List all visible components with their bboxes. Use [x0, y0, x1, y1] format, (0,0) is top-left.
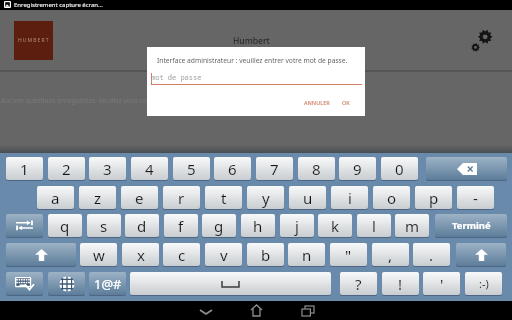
button[interactable]: "	[330, 243, 367, 266]
button[interactable]: m	[395, 214, 429, 237]
button[interactable]: Shift	[6, 243, 76, 266]
button[interactable]: g	[202, 214, 236, 237]
staticText: f	[178, 216, 184, 236]
staticText: e	[135, 188, 144, 208]
button[interactable]: n	[288, 243, 325, 266]
button[interactable]: Change language	[48, 272, 85, 295]
button[interactable]: v	[205, 243, 242, 266]
staticText: i	[348, 188, 352, 208]
staticText: 2	[62, 159, 71, 179]
button[interactable]: Recent apps	[294, 301, 322, 320]
button[interactable]: Settings	[468, 23, 502, 55]
staticText: z	[94, 188, 102, 208]
staticText: 4	[145, 159, 154, 179]
button[interactable]: 7	[256, 157, 293, 180]
staticText: Aucune questions enregistrées. Veuillez …	[1, 96, 204, 105]
staticText: m	[405, 216, 420, 236]
button[interactable]: t	[205, 186, 242, 209]
staticText: 0	[395, 159, 404, 179]
button[interactable]: p	[415, 186, 452, 209]
button[interactable]: d	[125, 214, 159, 237]
button[interactable]: z	[79, 186, 116, 209]
button[interactable]: j	[280, 214, 314, 237]
button[interactable]: 2	[48, 157, 85, 180]
button[interactable]: Backspace	[426, 157, 507, 180]
staticText: -	[473, 188, 478, 208]
button[interactable]: Shift	[456, 243, 506, 266]
staticText: t	[221, 188, 227, 208]
staticText: 1	[20, 159, 29, 179]
button[interactable]: OK	[338, 97, 354, 108]
staticText: ANNULER	[304, 99, 330, 106]
staticText: p	[429, 188, 439, 208]
button[interactable]: .	[413, 243, 450, 266]
button[interactable]: Home	[242, 301, 270, 320]
button[interactable]: 6	[214, 157, 251, 180]
button[interactable]: i	[331, 186, 368, 209]
staticText: mot de passe	[151, 73, 202, 83]
staticText: :-)	[479, 276, 489, 291]
button[interactable]: Terminé	[435, 214, 507, 237]
button[interactable]: Hide keyboard	[6, 272, 43, 295]
button[interactable]: Tab	[6, 214, 43, 237]
button[interactable]: ANNULER	[302, 97, 332, 108]
button[interactable]: c	[163, 243, 200, 266]
button[interactable]: a	[37, 186, 74, 209]
button[interactable]: 9	[339, 157, 376, 180]
button[interactable]: -	[457, 186, 494, 209]
button[interactable]: 3	[89, 157, 126, 180]
button[interactable]: l	[357, 214, 391, 237]
staticText: r	[178, 188, 185, 208]
staticText: x	[137, 245, 145, 265]
button[interactable]: '	[423, 272, 460, 295]
button[interactable]: s	[87, 214, 121, 237]
staticText: h	[253, 216, 263, 236]
staticText: '	[440, 274, 444, 294]
button[interactable]: :-)	[465, 272, 502, 295]
button[interactable]: q	[48, 214, 82, 237]
staticText: Enregistrement capture écran...	[14, 1, 103, 9]
button[interactable]: x	[122, 243, 159, 266]
staticText: "	[345, 245, 352, 265]
staticText: OK	[342, 99, 350, 106]
staticText: l	[372, 216, 376, 236]
staticText: q	[60, 216, 70, 236]
staticText: v	[220, 245, 228, 265]
staticText: c	[178, 245, 186, 265]
button[interactable]: Back	[192, 301, 220, 320]
staticText: o	[387, 188, 397, 208]
button[interactable]: 8	[298, 157, 335, 180]
staticText: k	[331, 216, 340, 236]
staticText: d	[137, 216, 147, 236]
button[interactable]: w	[80, 243, 117, 266]
button[interactable]: 5	[173, 157, 210, 180]
button[interactable]: y	[247, 186, 284, 209]
button[interactable]: 1@#	[89, 272, 126, 295]
staticText: g	[214, 216, 224, 236]
button[interactable]: o	[373, 186, 410, 209]
button[interactable]: r	[163, 186, 200, 209]
staticText: 7	[270, 159, 279, 179]
button[interactable]: u	[289, 186, 326, 209]
button[interactable]: h	[241, 214, 275, 237]
staticText: b	[261, 245, 271, 265]
staticText: 6	[228, 159, 237, 179]
button[interactable]: 4	[131, 157, 168, 180]
staticText: w	[93, 245, 105, 265]
staticText: 8	[312, 159, 321, 179]
button[interactable]: b	[247, 243, 284, 266]
button[interactable]: e	[121, 186, 158, 209]
button[interactable]: ,	[372, 243, 409, 266]
button[interactable]: f	[164, 214, 198, 237]
button[interactable]: Humbert logo	[14, 21, 53, 60]
staticText: y	[262, 188, 270, 208]
button[interactable]: 0	[381, 157, 418, 180]
button[interactable]: Space	[130, 272, 331, 295]
staticText: 3	[103, 159, 112, 179]
staticText: 9	[353, 159, 362, 179]
button[interactable]: !	[382, 272, 419, 295]
button[interactable]: 1	[6, 157, 43, 180]
button[interactable]: ?	[340, 272, 377, 295]
button[interactable]: k	[318, 214, 352, 237]
staticText: j	[295, 216, 299, 236]
